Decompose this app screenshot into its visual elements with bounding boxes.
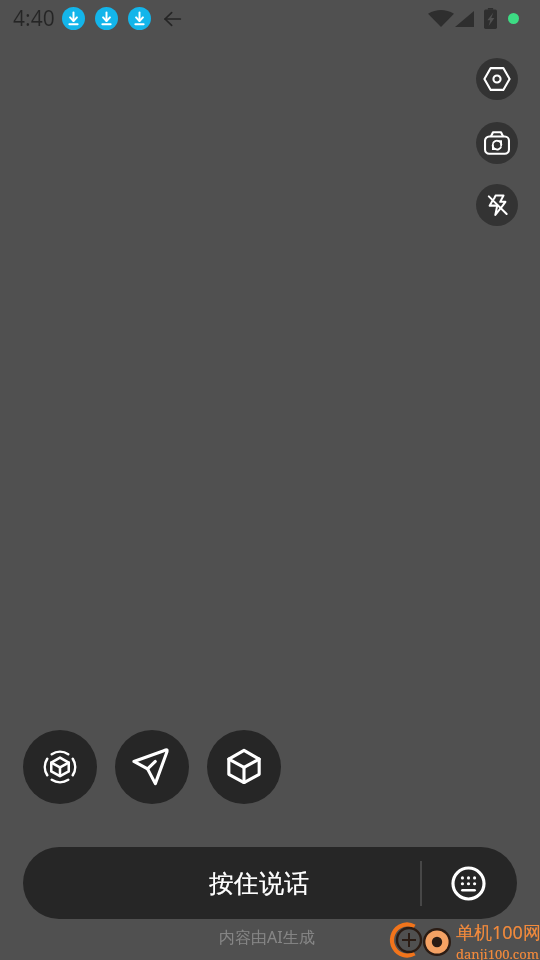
button[interactable]: Send — [115, 730, 189, 804]
button[interactable]: Keyboard — [446, 861, 491, 906]
button[interactable]: Settings — [476, 58, 518, 100]
staticText: danji100.com — [456, 945, 539, 960]
button[interactable]: Switch camera — [476, 122, 518, 164]
staticText: 单机100网 — [456, 920, 540, 945]
button[interactable]: Scan object — [23, 730, 97, 804]
button[interactable]: Flash off — [476, 184, 518, 226]
button[interactable]: 按住说话 — [23, 847, 420, 919]
button[interactable]: 3D model — [207, 730, 281, 804]
staticText: 内容由AI生成 — [219, 926, 315, 948]
staticText: 按住说话 — [209, 868, 309, 899]
staticText: 4:40 — [13, 4, 55, 33]
button[interactable]: Back — [164, 11, 181, 27]
